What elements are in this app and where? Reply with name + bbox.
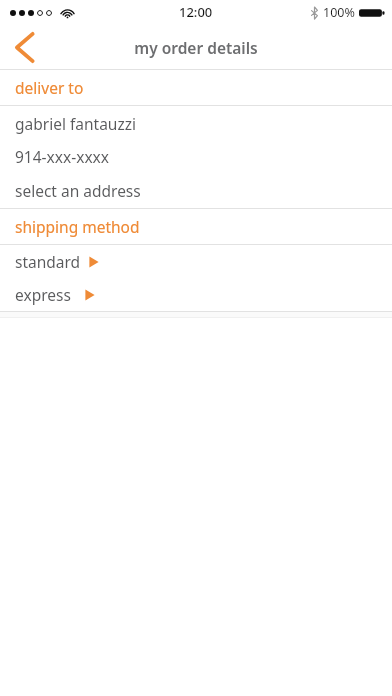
staticText: standard [15, 251, 81, 272]
staticText: 100% [323, 4, 355, 21]
staticText: express [15, 284, 71, 305]
button[interactable]: standard [0, 245, 392, 278]
staticText: shipping method [15, 216, 140, 237]
button[interactable]: Back [0, 24, 48, 70]
staticText: gabriel fantauzzi [15, 113, 136, 134]
staticText: my order details [134, 37, 258, 58]
button[interactable]: gabriel fantauzzi [0, 106, 392, 140]
staticText: deliver to [15, 77, 84, 98]
button[interactable]: express [0, 278, 392, 311]
button[interactable]: 914-xxx-xxxx [0, 140, 392, 173]
staticText: 12:00 [179, 3, 213, 21]
staticText: select an address [15, 180, 141, 201]
staticText: 914-xxx-xxxx [15, 146, 109, 167]
button[interactable]: select an address [0, 173, 392, 208]
